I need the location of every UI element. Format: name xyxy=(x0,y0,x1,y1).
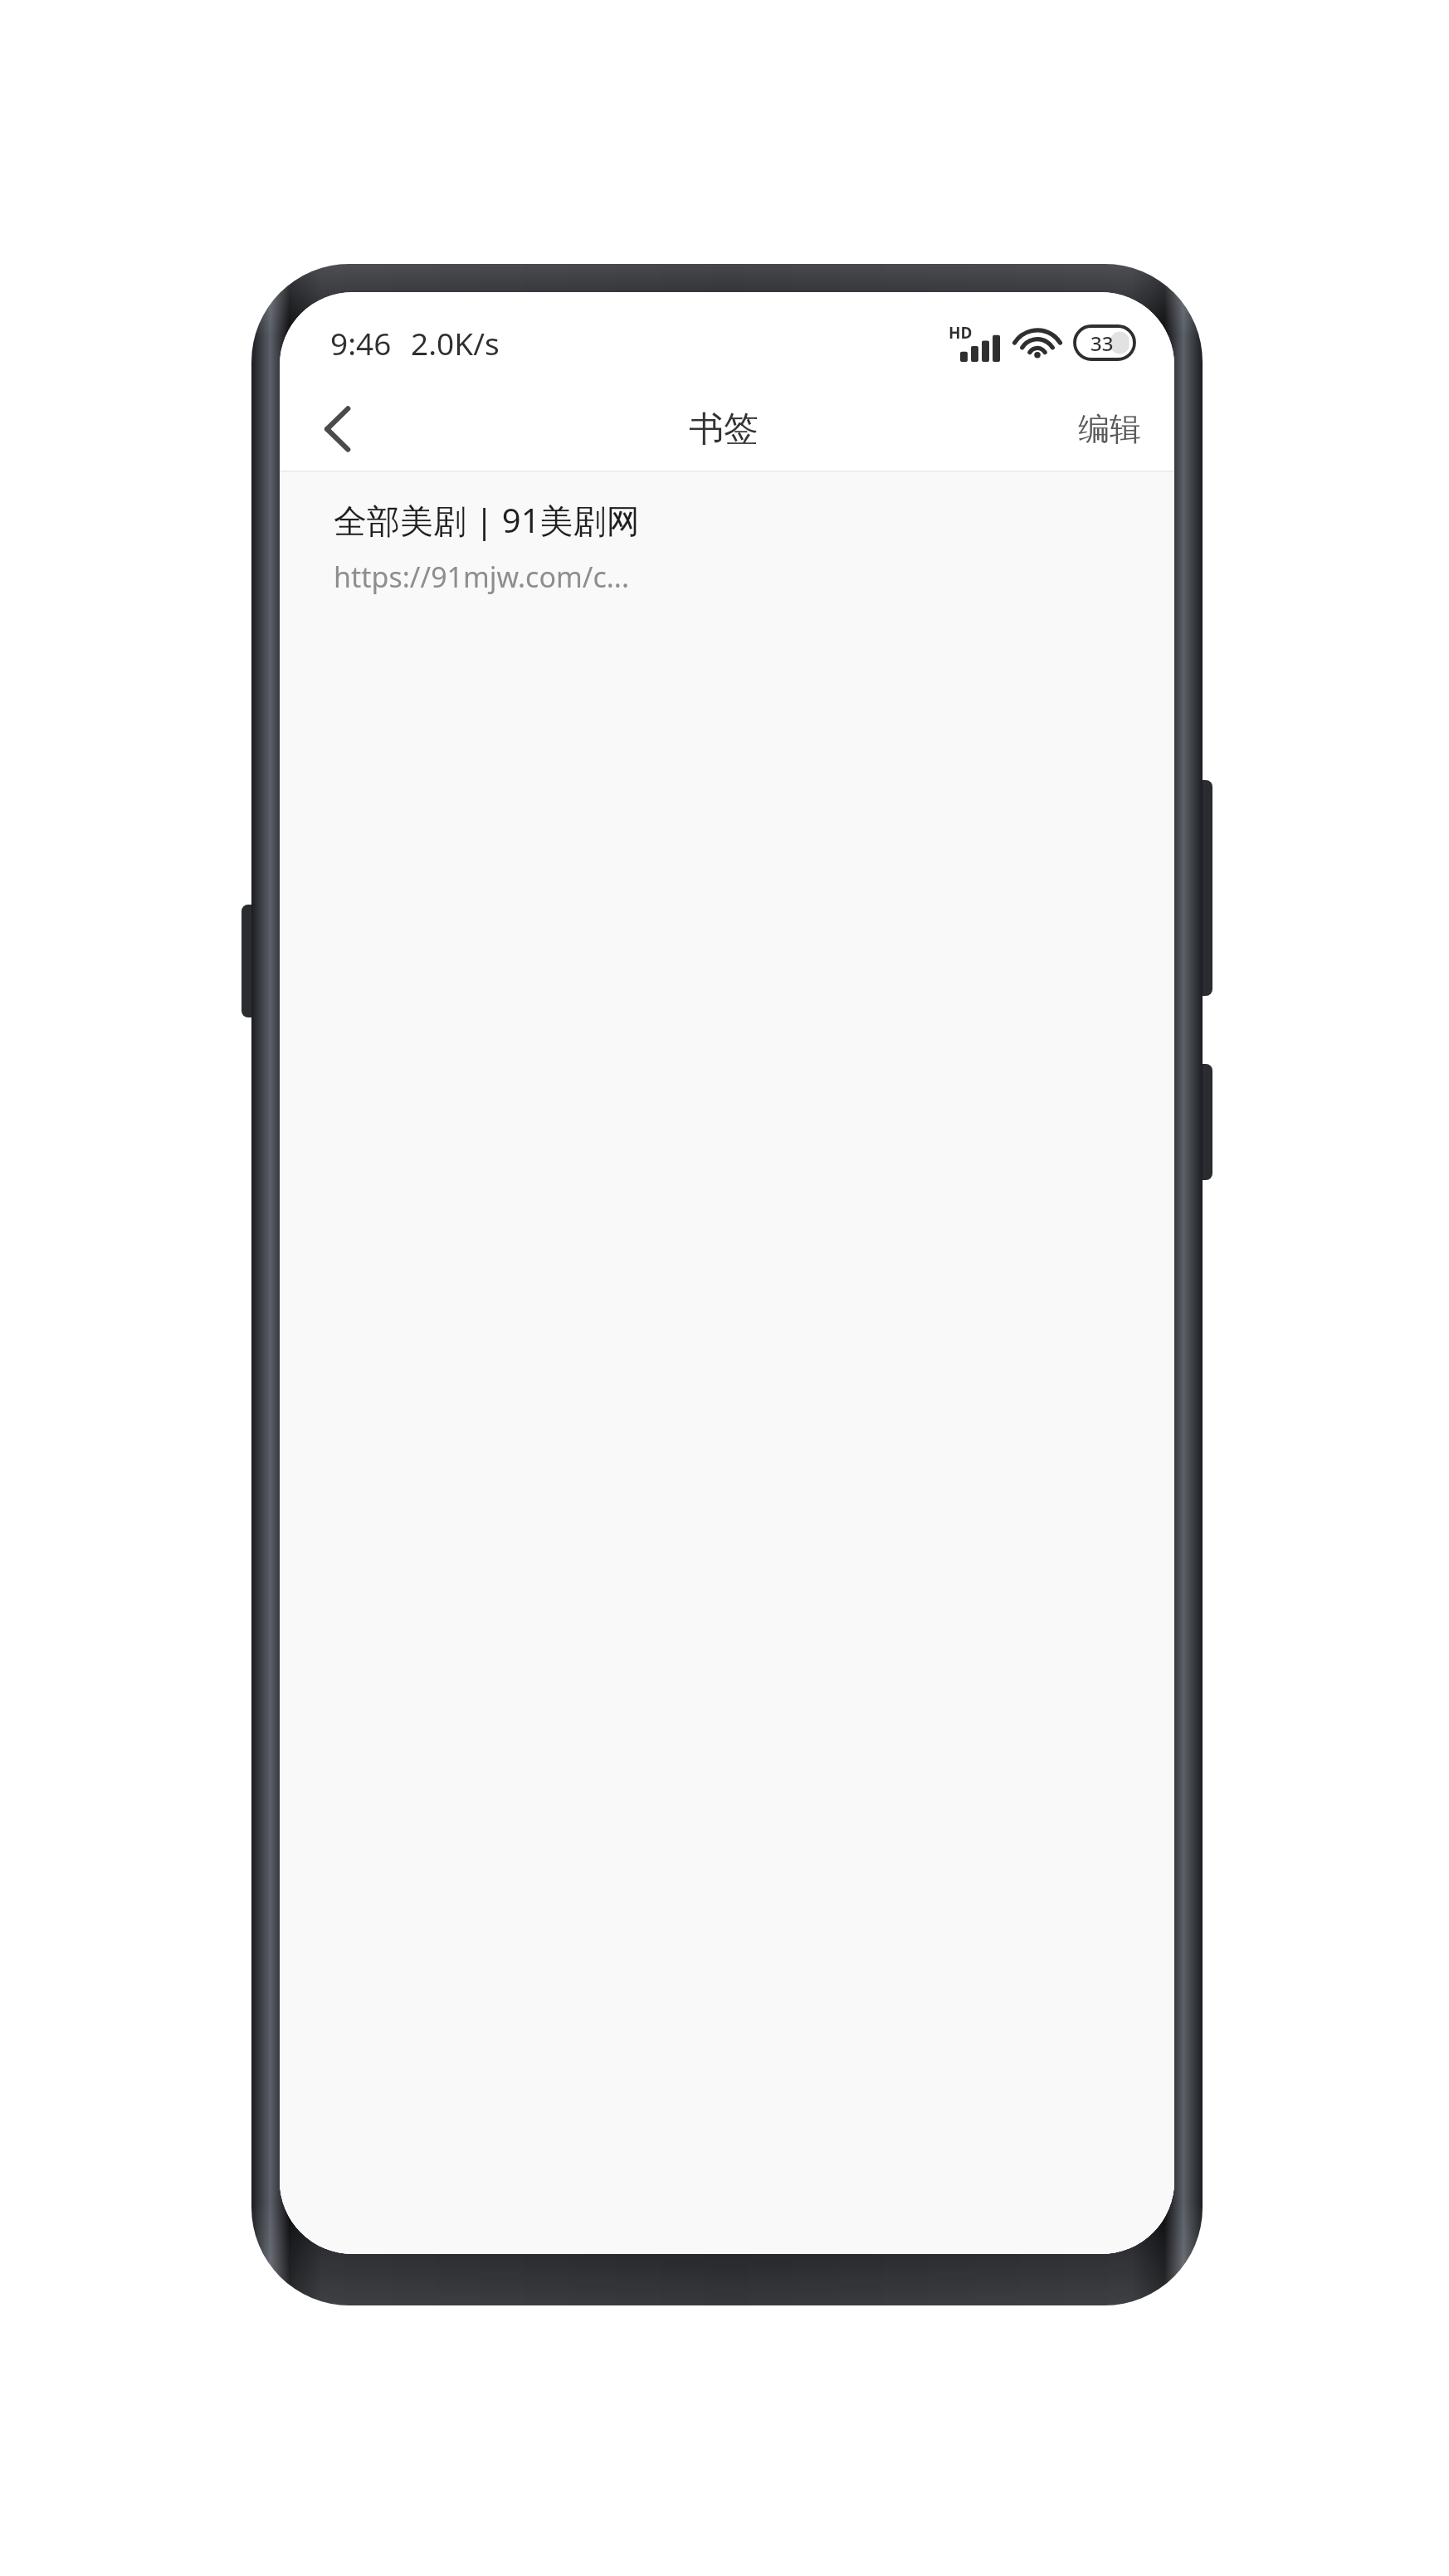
button[interactable]: Back xyxy=(291,387,384,471)
button[interactable]: 编辑 xyxy=(1045,387,1174,471)
staticText: 编辑 xyxy=(1078,409,1141,449)
staticText: https://91mjw.com/c... xyxy=(334,558,630,596)
staticText: 9:46 xyxy=(330,322,392,363)
staticText: HD xyxy=(949,322,973,344)
staticText: 全部美剧 | 91美剧网 xyxy=(334,497,640,543)
staticText: 33 xyxy=(1090,329,1114,357)
button[interactable]: 全部美剧 | 91美剧网 xyxy=(280,472,1174,620)
staticText: 2.0K/s xyxy=(411,322,500,363)
staticText: 书签 xyxy=(689,407,759,451)
